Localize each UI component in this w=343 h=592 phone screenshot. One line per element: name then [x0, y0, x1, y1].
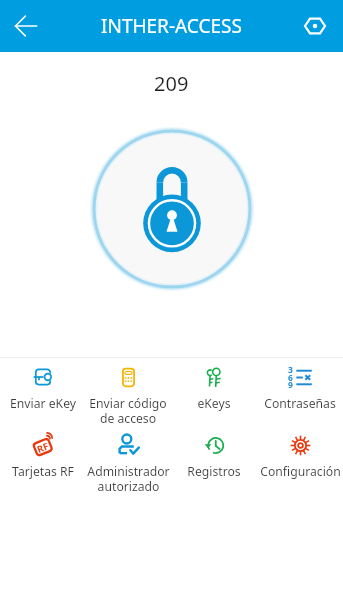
staticText: eKeys [197, 395, 231, 412]
staticText: 9 [288, 379, 293, 391]
staticText: Contraseñas [264, 395, 336, 412]
button[interactable]: Enviar código de acceso [85, 360, 171, 428]
button[interactable]: eKeys [171, 360, 257, 428]
button[interactable]: Configuración [257, 428, 343, 496]
staticText: 3 [288, 364, 293, 376]
staticText: Tarjetas RF [12, 463, 74, 480]
button[interactable]: RF [0, 428, 85, 496]
staticText: Enviar código de acceso [89, 395, 167, 426]
staticText: Administrador autorizado [87, 463, 170, 494]
button[interactable]: Settings [295, 6, 335, 46]
staticText: INTHER-ACCESS [101, 13, 242, 39]
button[interactable]: Administrador autorizado [85, 428, 171, 496]
staticText: 209 [154, 70, 189, 97]
button[interactable]: 3 [257, 360, 343, 428]
button[interactable]: Unlock [90, 127, 254, 291]
staticText: Enviar eKey [10, 395, 76, 412]
button[interactable]: Back [6, 6, 46, 46]
button[interactable]: Registros [171, 428, 257, 496]
staticText: Registros [187, 463, 241, 480]
button[interactable]: Enviar eKey [0, 360, 85, 428]
staticText: Configuración [260, 463, 341, 480]
staticText: RF [35, 439, 51, 456]
staticText: 6 [288, 372, 293, 384]
